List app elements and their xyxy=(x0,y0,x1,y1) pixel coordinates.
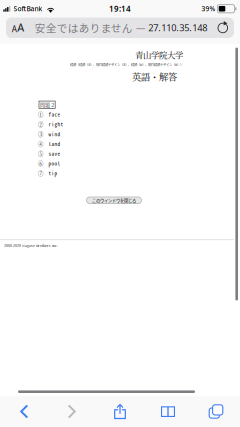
staticText: ③ xyxy=(38,130,43,138)
staticText: A xyxy=(17,20,24,35)
staticText: ④ xyxy=(38,140,43,147)
staticText: save xyxy=(48,150,60,157)
staticText: face xyxy=(48,110,60,118)
button[interactable]: Forward xyxy=(48,396,96,427)
staticText: 青山学院大学 xyxy=(135,48,183,61)
staticText: 19:14 xyxy=(109,3,131,14)
button[interactable]: Tabs xyxy=(192,396,240,427)
staticText: ⑥ xyxy=(38,159,43,167)
staticText: SoftBank xyxy=(14,4,43,13)
staticText: wind xyxy=(48,130,60,138)
staticText: 安全ではありません xyxy=(35,20,133,35)
button[interactable]: Back xyxy=(0,396,48,427)
staticText: pool xyxy=(48,159,60,167)
staticText: ⑤ xyxy=(38,150,43,157)
button[interactable]: Page settings xyxy=(6,17,30,38)
staticText: — xyxy=(136,22,145,34)
staticText: 27.110.35.148 xyxy=(148,22,207,34)
staticText: land xyxy=(48,140,60,147)
staticText: 2000-2020 Nagase Brothers Inc. xyxy=(4,243,58,248)
staticText: このウインドウを閉じる xyxy=(92,197,136,203)
button[interactable]: Reload xyxy=(212,17,234,38)
staticText: 39% xyxy=(201,4,215,13)
staticText: ① xyxy=(38,110,43,118)
button[interactable]: Share xyxy=(96,396,144,427)
staticText: tip xyxy=(48,169,57,177)
staticText: 経済（経済（A）、現代経済デザイン（A）、経済（B）、現代経済デザイン（B）） xyxy=(70,62,183,67)
staticText: A xyxy=(12,24,17,34)
staticText: ⑦ xyxy=(38,169,43,177)
staticText: 問題 xyxy=(40,101,50,108)
staticText: right xyxy=(48,120,63,128)
button[interactable]: Bookmarks xyxy=(144,396,192,427)
staticText: 英語・解答 xyxy=(132,70,177,83)
button[interactable]: このウインドウを閉じる xyxy=(86,197,141,204)
staticText: ② xyxy=(38,120,43,128)
staticText: 2 xyxy=(51,101,54,109)
